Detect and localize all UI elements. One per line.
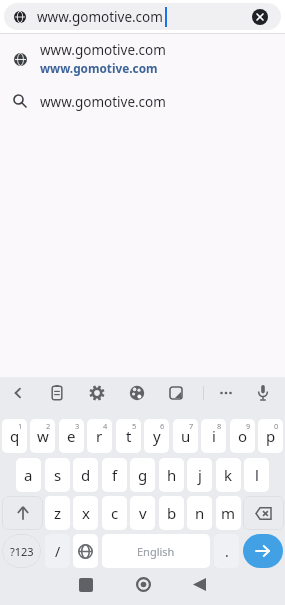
- button[interactable]: x: [73, 496, 98, 530]
- staticText: 8: [217, 421, 222, 431]
- staticText: 2: [46, 421, 51, 431]
- staticText: r: [96, 426, 103, 446]
- button[interactable]: i: [201, 419, 226, 453]
- button[interactable]: l: [244, 458, 269, 492]
- button[interactable]: u: [173, 419, 198, 453]
- button[interactable]: d: [73, 458, 98, 492]
- button[interactable]: [166, 383, 186, 403]
- button[interactable]: [47, 383, 67, 403]
- staticText: u: [181, 426, 191, 446]
- staticText: m: [221, 503, 236, 523]
- staticText: 7: [189, 421, 194, 431]
- button[interactable]: m: [216, 496, 241, 530]
- button[interactable]: [136, 577, 151, 592]
- button[interactable]: [73, 534, 98, 568]
- button[interactable]: q: [2, 419, 27, 453]
- button[interactable]: [79, 578, 93, 592]
- button[interactable]: r: [87, 419, 112, 453]
- button[interactable]: v: [130, 496, 155, 530]
- staticText: www.gomotive.com: [40, 93, 166, 111]
- button[interactable]: j: [187, 458, 212, 492]
- staticText: www.gomotive.com: [40, 60, 158, 76]
- staticText: 3: [75, 421, 80, 431]
- staticText: b: [167, 503, 177, 523]
- staticText: j: [198, 465, 202, 485]
- staticText: v: [139, 503, 147, 523]
- button[interactable]: c: [102, 496, 127, 530]
- button[interactable]: [127, 383, 147, 403]
- button[interactable]: .: [214, 534, 239, 568]
- staticText: .: [225, 542, 229, 561]
- staticText: g: [138, 465, 148, 485]
- staticText: x: [82, 503, 90, 523]
- staticText: a: [24, 465, 33, 485]
- staticText: 0: [274, 421, 279, 431]
- button[interactable]: [243, 534, 283, 568]
- button[interactable]: k: [216, 458, 241, 492]
- button[interactable]: [216, 383, 236, 403]
- staticText: p: [266, 426, 276, 446]
- button[interactable]: n: [187, 496, 212, 530]
- staticText: t: [126, 426, 132, 446]
- staticText: /: [55, 542, 61, 561]
- staticText: 1: [18, 421, 23, 431]
- staticText: h: [167, 465, 177, 485]
- button[interactable]: b: [159, 496, 184, 530]
- staticText: o: [238, 426, 248, 446]
- button[interactable]: a: [16, 458, 41, 492]
- button[interactable]: [2, 496, 43, 530]
- button[interactable]: [253, 383, 273, 403]
- button[interactable]: w: [30, 419, 55, 453]
- button[interactable]: t: [116, 419, 141, 453]
- staticText: c: [111, 503, 119, 523]
- button[interactable]: h: [159, 458, 184, 492]
- staticText: w: [37, 426, 49, 446]
- staticText: d: [81, 465, 91, 485]
- staticText: 4: [103, 421, 108, 431]
- button[interactable]: [87, 383, 107, 403]
- staticText: f: [112, 465, 118, 485]
- button[interactable]: [0, 84, 285, 118]
- staticText: n: [195, 503, 205, 523]
- button[interactable]: f: [102, 458, 127, 492]
- button[interactable]: [0, 34, 285, 84]
- staticText: e: [67, 426, 76, 446]
- button[interactable]: [193, 578, 206, 591]
- button[interactable]: [243, 496, 284, 530]
- button[interactable]: z: [45, 496, 70, 530]
- button[interactable]: ?123: [2, 534, 41, 568]
- staticText: 5: [132, 421, 137, 431]
- button[interactable]: s: [45, 458, 70, 492]
- button[interactable]: o: [230, 419, 255, 453]
- button[interactable]: /: [45, 534, 70, 568]
- button[interactable]: y: [144, 419, 169, 453]
- staticText: i: [212, 426, 216, 446]
- button[interactable]: e: [59, 419, 84, 453]
- staticText: English: [137, 544, 175, 559]
- button[interactable]: g: [130, 458, 155, 492]
- staticText: l: [255, 465, 259, 485]
- button[interactable]: p: [258, 419, 283, 453]
- staticText: 6: [160, 421, 165, 431]
- staticText: q: [10, 426, 20, 446]
- staticText: 9: [246, 421, 251, 431]
- staticText: ?123: [10, 544, 34, 559]
- staticText: www.gomotive.com: [37, 8, 163, 26]
- staticText: z: [54, 503, 62, 523]
- button[interactable]: [4, 3, 281, 30]
- staticText: www.gomotive.com: [40, 41, 166, 59]
- button[interactable]: English: [102, 534, 210, 568]
- staticText: s: [54, 465, 62, 485]
- button[interactable]: [8, 383, 28, 403]
- staticText: y: [153, 426, 161, 446]
- staticText: k: [224, 465, 233, 485]
